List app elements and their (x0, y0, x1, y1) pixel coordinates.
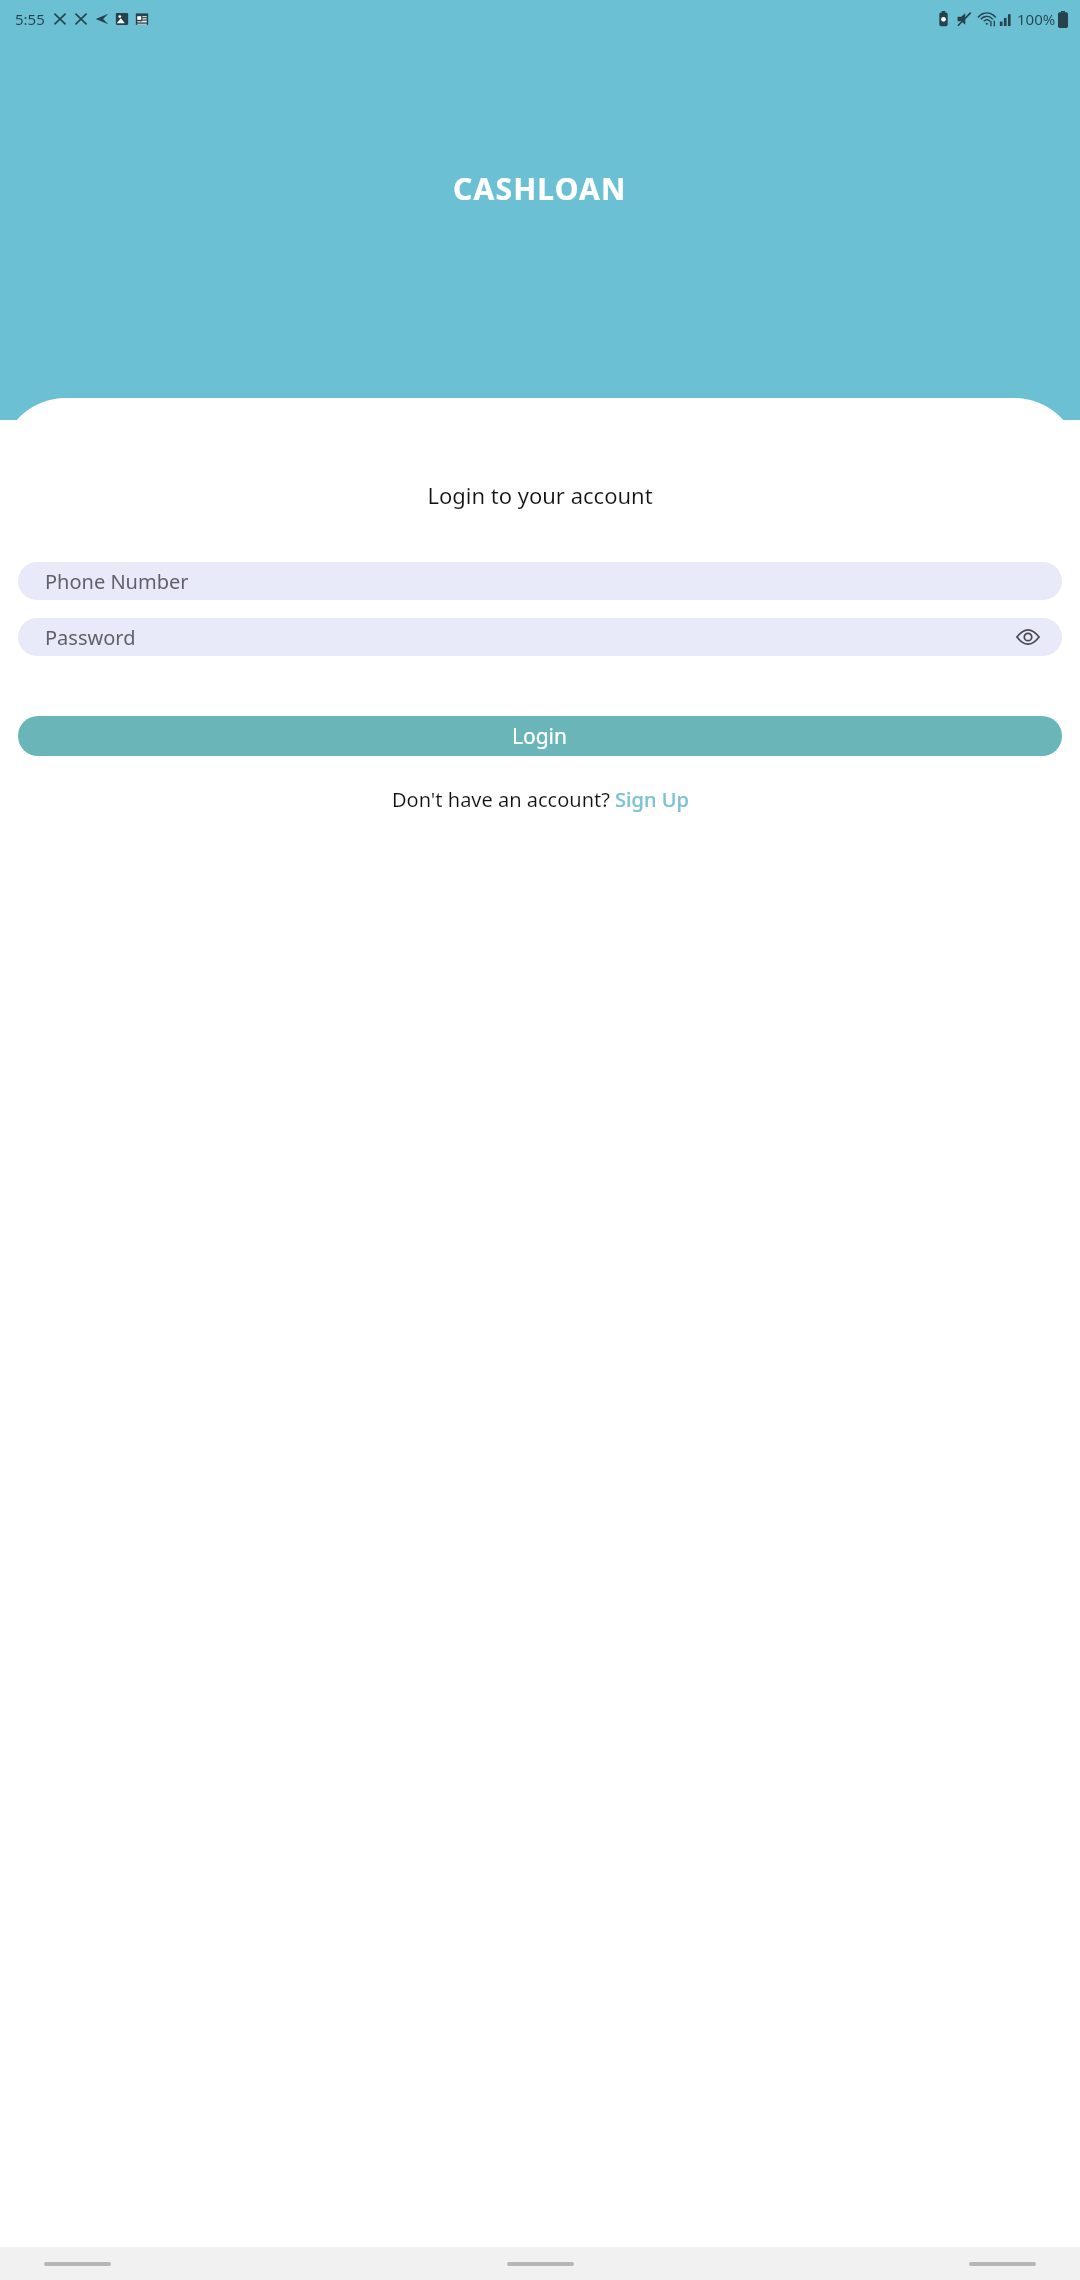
staticText: CASHLOAN (453, 168, 627, 209)
button[interactable]: Show password (1010, 619, 1046, 655)
button[interactable]: Login (18, 716, 1062, 756)
staticText: 100% (1017, 9, 1056, 29)
button[interactable]: Navigation (969, 2262, 1036, 2266)
staticText: Login to your account (427, 480, 653, 510)
button[interactable]: Password (18, 618, 1062, 656)
staticText: Password (45, 624, 136, 651)
button[interactable]: Navigation (44, 2262, 111, 2266)
button[interactable]: Navigation (507, 2262, 574, 2266)
button[interactable]: Phone Number (18, 562, 1062, 600)
staticText: Phone Number (45, 568, 189, 595)
button[interactable]: Don't have an account? Sign Up (0, 786, 1080, 813)
staticText: Don't have an account? Sign Up (392, 786, 689, 813)
staticText: Login (512, 722, 568, 751)
staticText: 5:55 (15, 9, 45, 29)
